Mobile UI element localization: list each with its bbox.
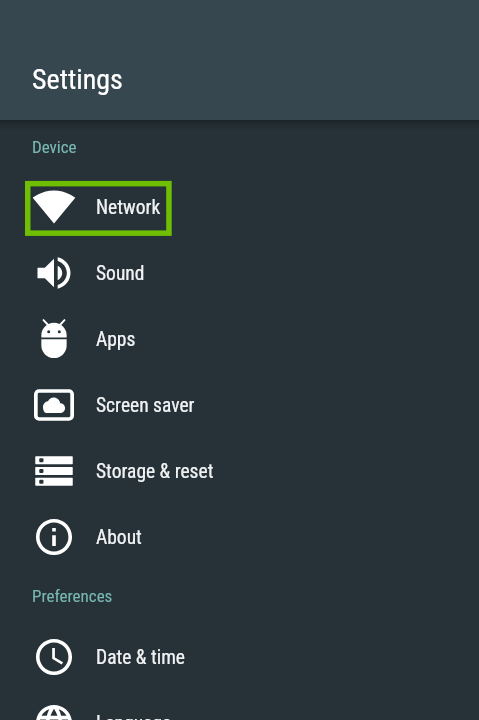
staticText: About <box>96 526 142 549</box>
staticText: Language <box>96 712 172 720</box>
button[interactable]: Network <box>25 176 255 242</box>
other: Date & time <box>28 631 80 683</box>
other: Sound <box>28 247 80 299</box>
staticText: Apps <box>96 328 136 351</box>
staticText: Storage & reset <box>96 460 214 483</box>
other: Storage & reset <box>28 445 80 497</box>
staticText: Settings <box>32 63 123 96</box>
button[interactable]: Language <box>25 692 255 720</box>
staticText: Network <box>96 196 161 219</box>
staticText: Sound <box>96 262 145 285</box>
staticText: Preferences <box>32 586 113 606</box>
button[interactable]: About <box>25 506 255 572</box>
other: Network <box>28 181 80 233</box>
other: About <box>28 511 80 563</box>
other: Screen saver <box>28 379 80 431</box>
button[interactable]: Sound <box>25 242 255 308</box>
staticText: Screen saver <box>96 394 195 417</box>
button[interactable]: Screen saver <box>25 374 255 440</box>
button[interactable]: Storage & reset <box>25 440 255 506</box>
staticText: Device <box>32 137 77 157</box>
other: Apps <box>28 313 80 365</box>
button[interactable]: Apps <box>25 308 255 374</box>
button[interactable]: Date & time <box>25 626 255 692</box>
staticText: Date & time <box>96 646 186 669</box>
other: Language <box>28 697 80 720</box>
